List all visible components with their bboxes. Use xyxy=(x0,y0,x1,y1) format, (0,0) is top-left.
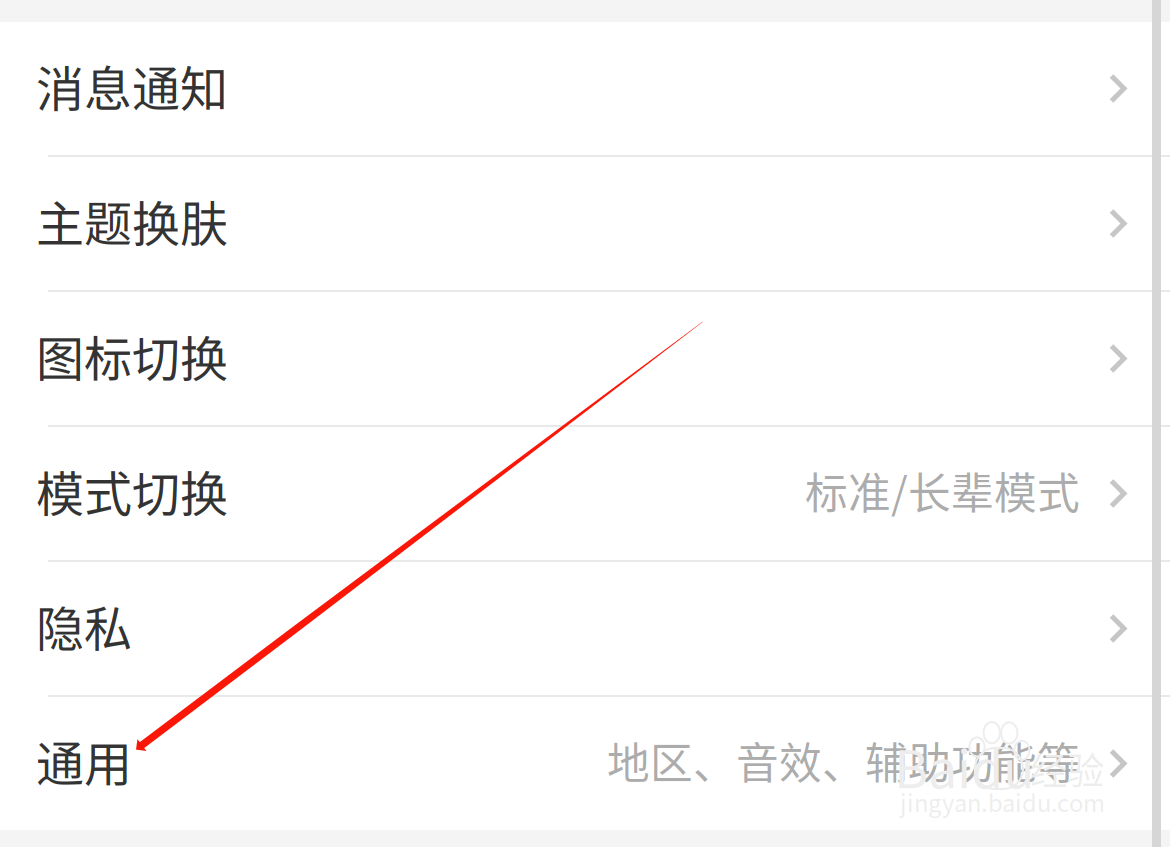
button[interactable]: 消息通知 xyxy=(0,22,1170,155)
button[interactable]: 通用 xyxy=(0,697,1170,830)
button[interactable]: 主题换肤 xyxy=(0,157,1170,290)
button[interactable]: 图标切换 xyxy=(0,292,1170,425)
staticText: 地区、音效、辅助功能等 xyxy=(607,730,1080,791)
button[interactable]: 模式切换 xyxy=(0,427,1170,560)
staticText: 通用 xyxy=(36,726,132,795)
staticText: jingyan.baidu.com xyxy=(900,784,1105,819)
staticText: 经验 xyxy=(1030,742,1104,796)
staticText: 图标切换 xyxy=(36,321,228,390)
staticText: 隐私 xyxy=(36,591,132,660)
staticText: 模式切换 xyxy=(36,456,228,525)
staticText: Baidu xyxy=(894,728,1035,803)
staticText: 消息通知 xyxy=(36,51,228,120)
staticText: 主题换肤 xyxy=(36,186,228,255)
button[interactable]: 隐私 xyxy=(0,562,1170,695)
staticText: 标准/长辈模式 xyxy=(805,460,1080,521)
